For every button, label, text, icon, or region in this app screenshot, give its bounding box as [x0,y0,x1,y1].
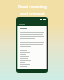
staticText: and relevant [20,11,45,17]
staticText: Read meaning [18,4,47,10]
